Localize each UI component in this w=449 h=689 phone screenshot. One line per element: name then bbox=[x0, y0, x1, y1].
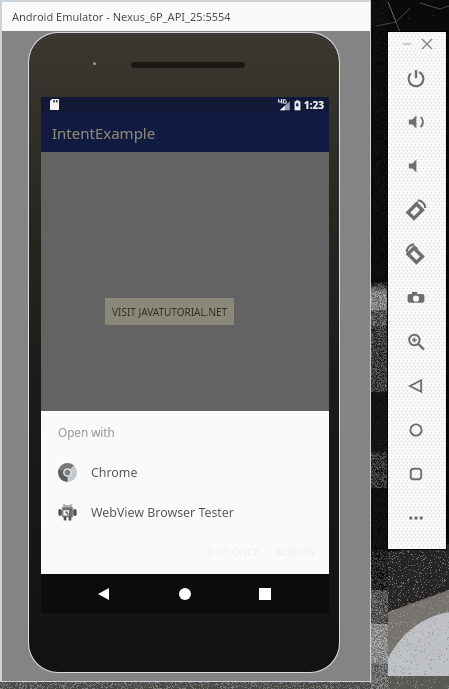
button[interactable]: Home bbox=[402, 416, 430, 444]
staticText: JUST ONCE bbox=[208, 545, 260, 559]
staticText: Android Emulator - Nexus_6P_API_25:5554 bbox=[12, 9, 231, 24]
staticText: IntentExample bbox=[52, 123, 156, 143]
button[interactable]: Volume up bbox=[402, 108, 430, 136]
button[interactable]: Back bbox=[89, 580, 117, 608]
staticText: ALWAYS bbox=[276, 545, 314, 559]
button[interactable]: Chrome bbox=[41, 452, 329, 492]
staticText: WebView Browser Tester bbox=[91, 504, 234, 521]
button[interactable]: Rotate right bbox=[402, 240, 430, 268]
button[interactable]: WebView Browser Tester bbox=[41, 492, 329, 532]
button[interactable]: Power bbox=[402, 64, 430, 92]
staticText: Chrome bbox=[91, 464, 138, 481]
button[interactable]: Overview bbox=[402, 460, 430, 488]
button[interactable]: Home bbox=[171, 580, 199, 608]
button[interactable]: Recents bbox=[251, 580, 279, 608]
staticText: VISIT JAVATUTORIAL.NET bbox=[112, 305, 228, 319]
button[interactable]: Back bbox=[402, 372, 430, 400]
button[interactable]: Close bbox=[418, 35, 436, 53]
staticText: Open with bbox=[58, 424, 115, 440]
button[interactable]: Volume down bbox=[402, 152, 430, 180]
button[interactable]: Minimize bbox=[398, 35, 416, 53]
button[interactable]: Rotate left bbox=[402, 196, 430, 224]
button[interactable]: More bbox=[402, 504, 430, 532]
button[interactable]: Screenshot bbox=[402, 284, 430, 312]
button[interactable]: VISIT JAVATUTORIAL.NET bbox=[105, 298, 234, 325]
button[interactable]: Zoom bbox=[402, 328, 430, 356]
staticText: 1:23 bbox=[304, 98, 324, 112]
